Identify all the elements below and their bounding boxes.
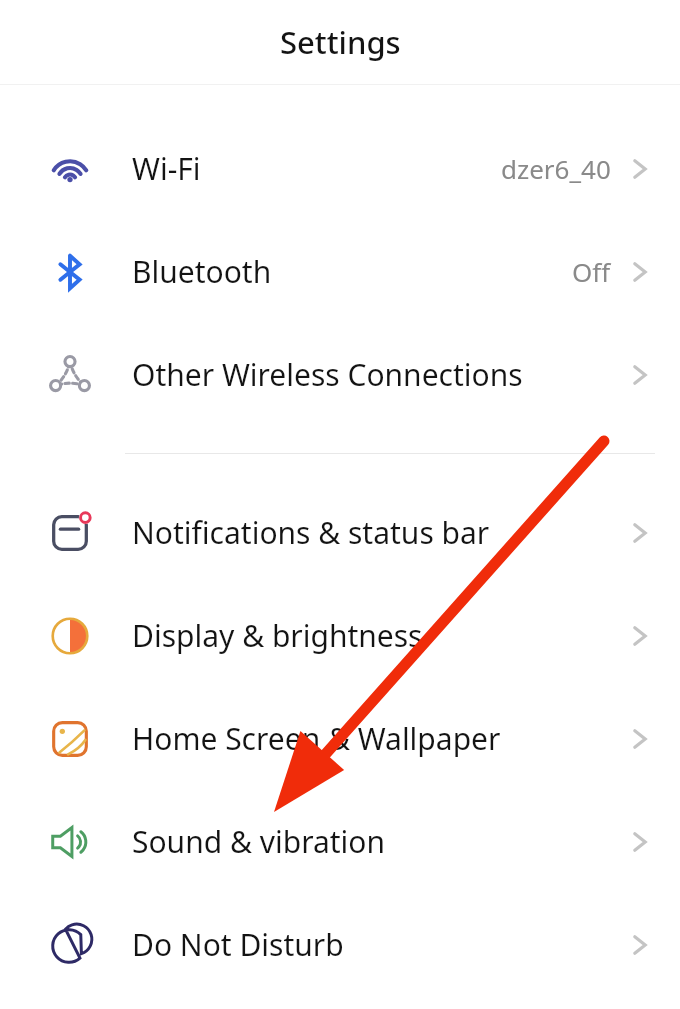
staticText: Bluetooth bbox=[132, 251, 572, 292]
staticText: Other Wireless Connections bbox=[132, 354, 627, 395]
button[interactable]: Notifications & status bar bbox=[0, 481, 680, 584]
staticText: Display & brightness bbox=[132, 615, 627, 656]
button[interactable]: Other Wireless Connections bbox=[0, 323, 680, 426]
staticText: Do Not Disturb bbox=[132, 924, 627, 965]
button[interactable]: Home Screen & Wallpaper bbox=[0, 687, 680, 790]
staticText: Home Screen & Wallpaper bbox=[132, 718, 627, 759]
staticText: dzer6_40 bbox=[501, 151, 611, 186]
button[interactable]: Sound & vibration bbox=[0, 790, 680, 893]
staticText: Wi-Fi bbox=[132, 148, 501, 189]
staticText: Settings bbox=[280, 21, 401, 63]
button[interactable]: Bluetooth bbox=[0, 220, 680, 323]
button[interactable]: Display & brightness bbox=[0, 584, 680, 687]
staticText: Off bbox=[572, 254, 611, 289]
staticText: Sound & vibration bbox=[132, 821, 627, 862]
button[interactable]: Do Not Disturb bbox=[0, 893, 680, 996]
staticText: Notifications & status bar bbox=[132, 512, 627, 553]
button[interactable]: Wi-Fi bbox=[0, 117, 680, 220]
